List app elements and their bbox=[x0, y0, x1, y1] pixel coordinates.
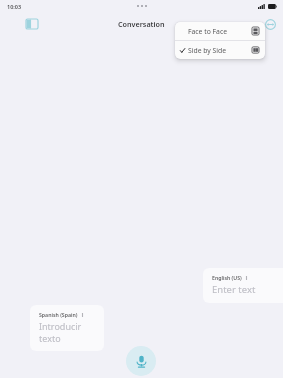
button[interactable]: View bbox=[239, 18, 260, 31]
staticText: English (US) bbox=[212, 274, 242, 281]
button[interactable]: Toggle sidebar bbox=[24, 16, 40, 32]
staticText: Side by Side bbox=[188, 46, 227, 55]
button[interactable]: Record with microphone bbox=[126, 346, 156, 376]
staticText: Face to Face bbox=[188, 27, 227, 36]
button[interactable]: Side by Side bbox=[175, 41, 265, 59]
staticText: View bbox=[242, 20, 257, 29]
staticText: Enter text bbox=[212, 283, 256, 296]
button[interactable]: Face to Face bbox=[175, 22, 265, 40]
staticText: Conversation bbox=[118, 19, 165, 29]
button[interactable]: English (US) bbox=[203, 268, 283, 303]
button[interactable]: More options bbox=[263, 17, 277, 31]
staticText: Spanish (Spain) bbox=[39, 311, 78, 318]
staticText: Introducir texto bbox=[39, 320, 95, 344]
button[interactable]: Spanish (Spain) bbox=[30, 305, 104, 351]
staticText: 10:03 bbox=[7, 3, 22, 10]
